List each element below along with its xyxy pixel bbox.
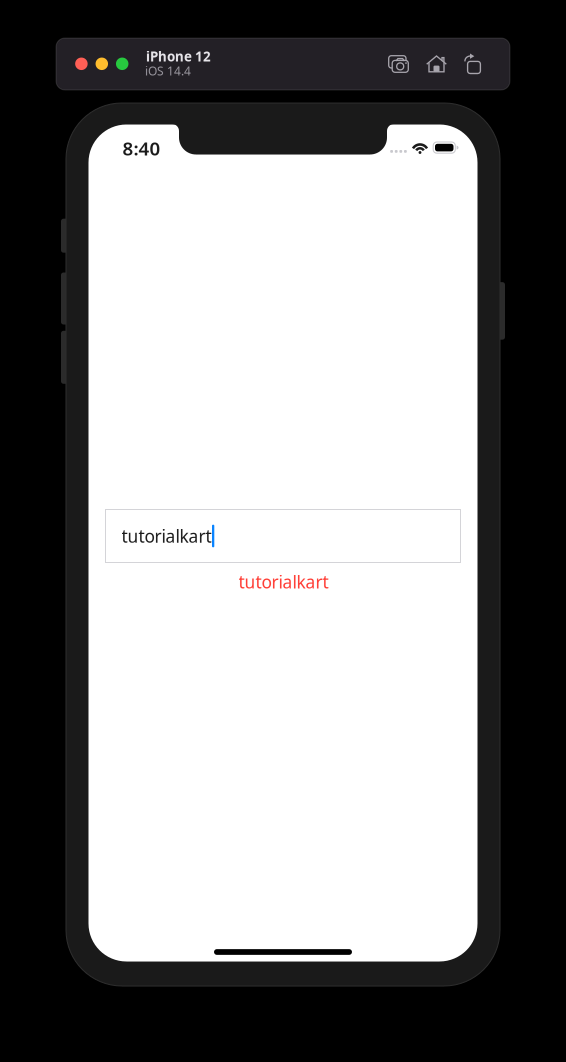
button[interactable]: tutorialkart — [105, 509, 460, 562]
staticText: iPhone 12 — [146, 47, 211, 65]
staticText: 8:40 — [122, 136, 160, 161]
staticText: iOS 14.4 — [145, 63, 191, 79]
button[interactable]: Take screenshot — [388, 55, 409, 73]
staticText: tutorialkart — [121, 524, 211, 547]
button[interactable]: Zoom window — [116, 57, 128, 70]
button[interactable]: Minimise window — [96, 57, 108, 70]
button[interactable]: Close window — [75, 57, 88, 70]
button[interactable]: Rotate device — [464, 55, 481, 73]
staticText: tutorialkart — [239, 570, 329, 593]
button[interactable]: Home — [426, 55, 447, 73]
